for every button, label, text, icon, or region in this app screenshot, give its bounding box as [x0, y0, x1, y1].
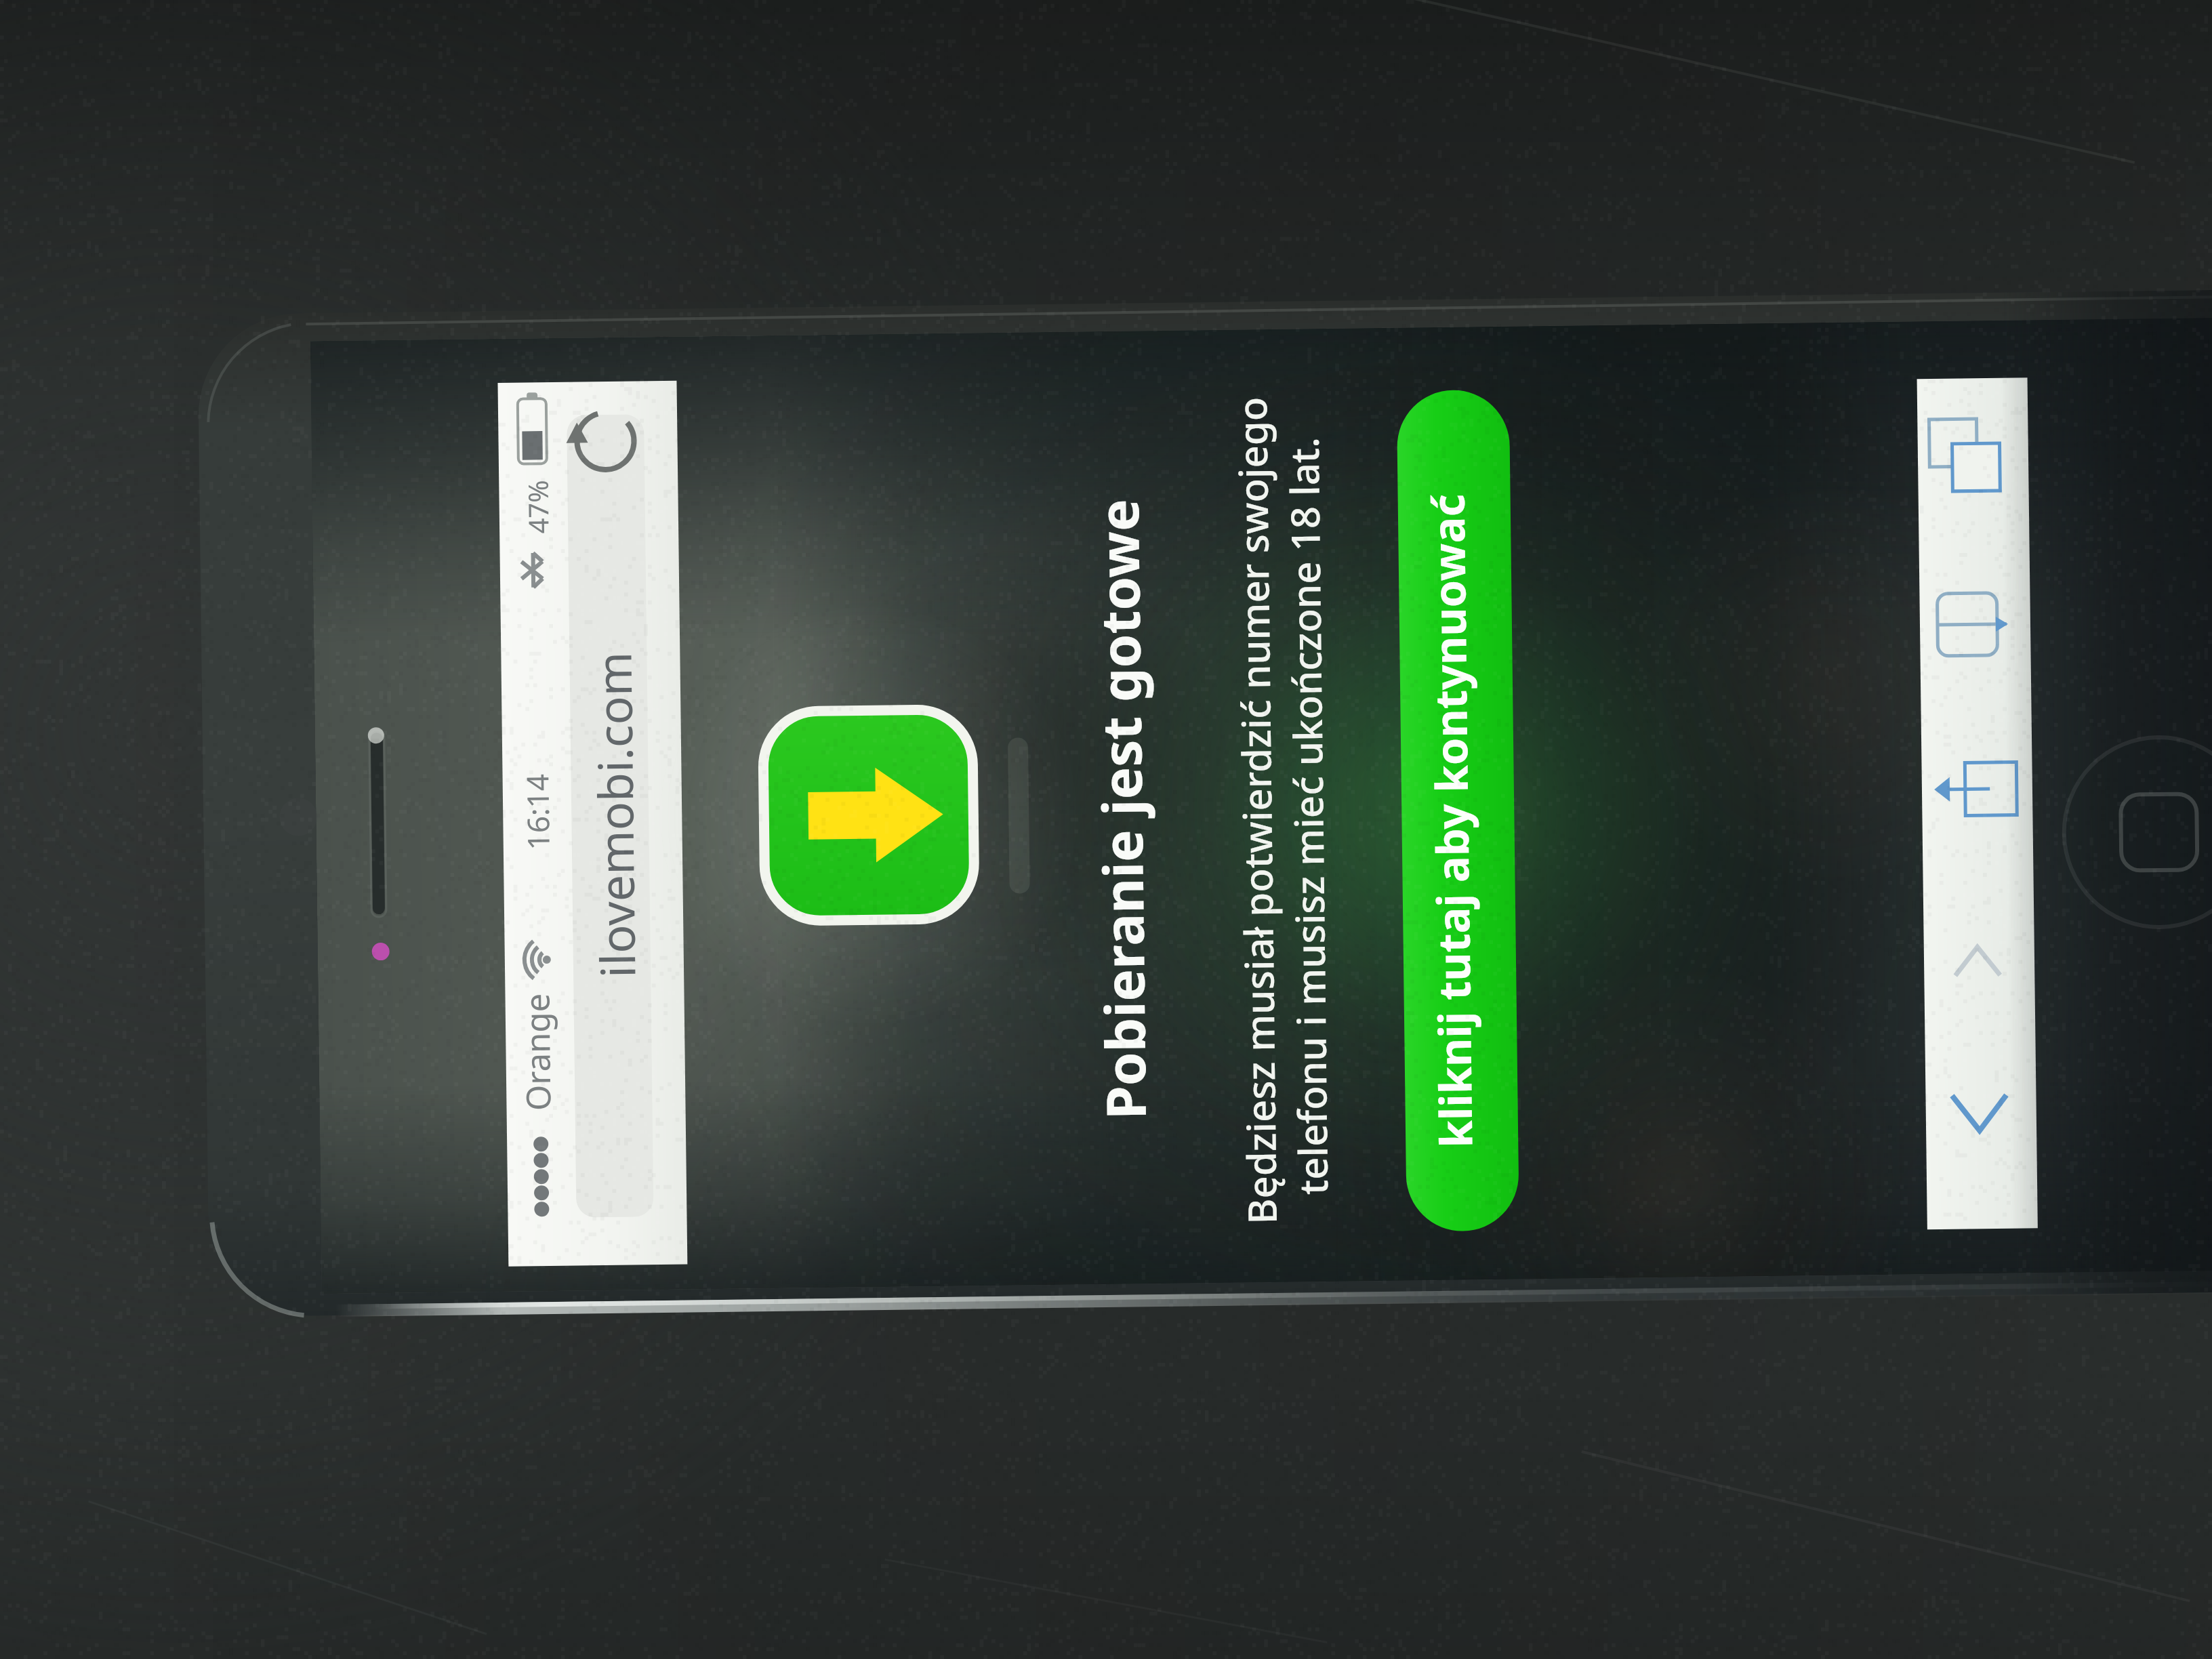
button[interactable]: Back — [1931, 928, 2020, 1013]
button[interactable]: kliknij tutaj aby kontynuować — [1401, 393, 1514, 1234]
button[interactable]: Pobierz — [764, 707, 976, 918]
button[interactable]: Bookmarks — [1931, 590, 2020, 678]
button[interactable]: Share — [1931, 752, 2020, 844]
button[interactable]: Pages — [1931, 420, 2020, 515]
button[interactable]: ilovemobi.com — [571, 407, 649, 1210]
button[interactable]: Pobieranie jest gotowe - kliknij tutaj a… — [0, 0, 2212, 1659]
button[interactable]: Forward — [1931, 1081, 2020, 1166]
